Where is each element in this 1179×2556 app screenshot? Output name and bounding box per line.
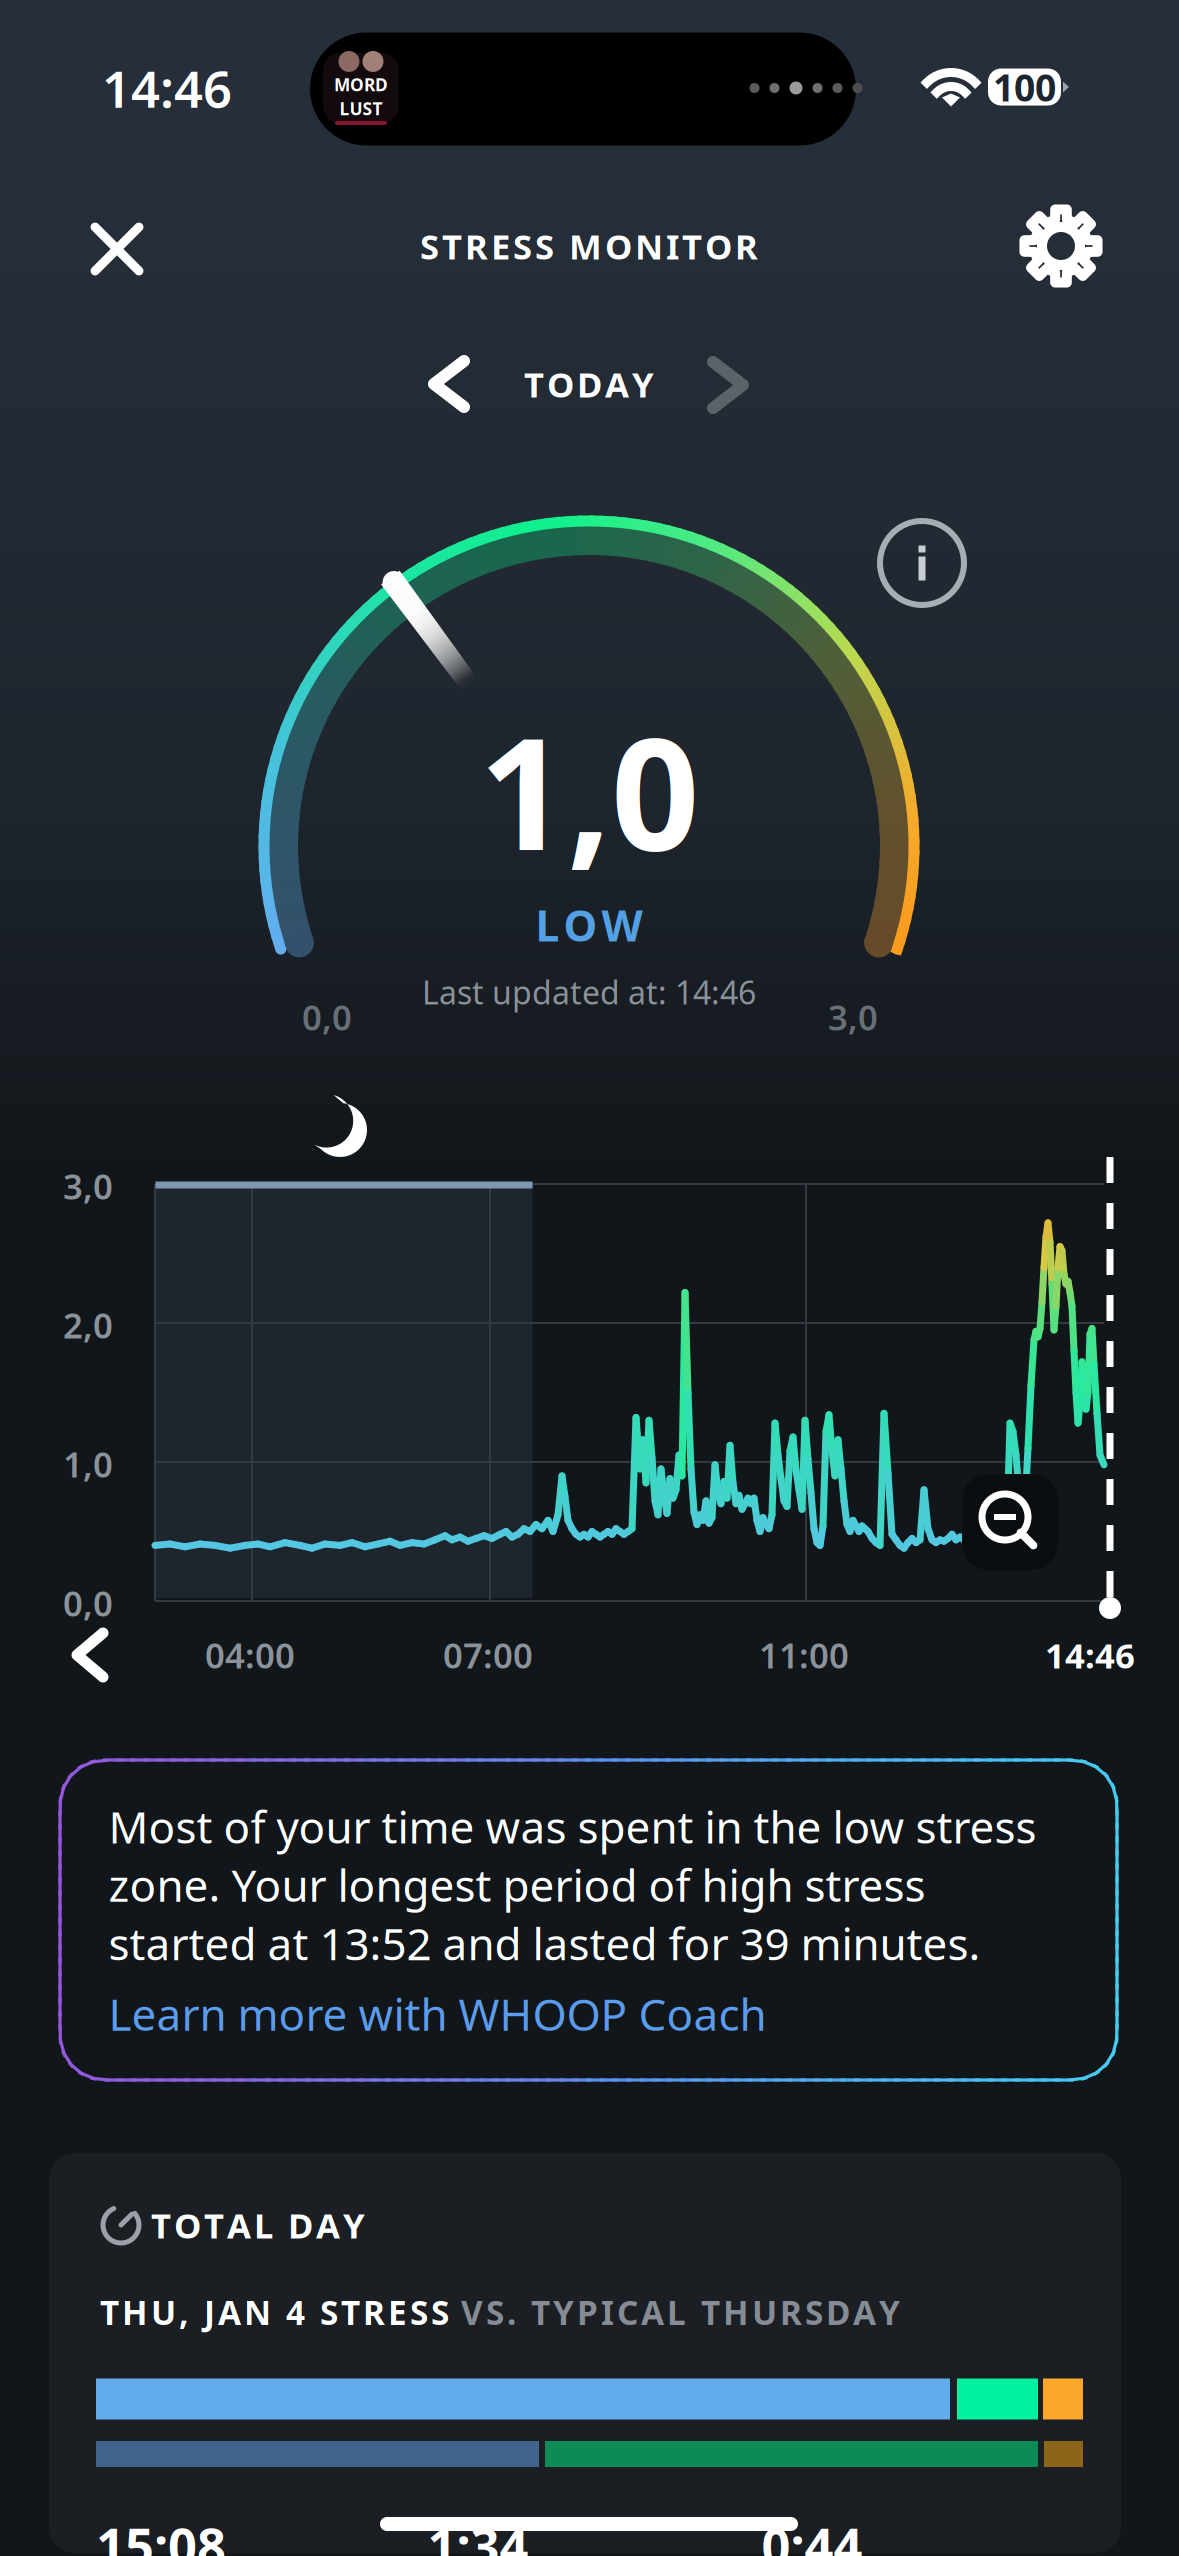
staticText: 1,0 xyxy=(479,687,699,893)
staticText: Learn more with WHOOP Coach xyxy=(108,1984,766,2043)
staticText: Last updated at: 14:46 xyxy=(422,971,756,1013)
staticText: 14:46 xyxy=(1045,1632,1135,1678)
staticText: L O W xyxy=(535,897,642,953)
button[interactable]: Close xyxy=(47,179,187,319)
staticText: 3,0 xyxy=(828,994,878,1040)
staticText: 2,0 xyxy=(63,1302,113,1348)
button[interactable]: Settings xyxy=(991,176,1131,316)
staticText: 0,0 xyxy=(63,1580,113,1626)
staticText: 04:00 xyxy=(205,1632,295,1678)
staticText: LUST xyxy=(339,97,382,120)
staticText: Most of your time was spent in the low s… xyxy=(108,1797,1036,1972)
staticText: T H U , J A N 4 S T R E S S xyxy=(100,2290,461,2334)
button[interactable]: Most of your time was spent in the low s… xyxy=(60,1760,1117,2080)
staticText: 1,0 xyxy=(63,1441,113,1487)
staticText: 14:46 xyxy=(102,54,232,122)
staticText: 3,0 xyxy=(63,1163,113,1209)
button[interactable]: Previous xyxy=(51,1607,129,1703)
button[interactable]: Previous day xyxy=(398,325,500,443)
staticText: 07:00 xyxy=(443,1632,533,1678)
staticText: 11:00 xyxy=(759,1632,849,1678)
staticText: V S . T Y P I C A L T H U R S D A Y xyxy=(461,2290,900,2334)
button[interactable]: Information xyxy=(880,521,964,605)
button[interactable]: Next day xyxy=(677,326,779,444)
staticText: 1:34 xyxy=(427,2511,528,2556)
staticText: T O D A Y xyxy=(524,361,654,407)
staticText: 100 xyxy=(993,62,1056,112)
staticText: 0:44 xyxy=(761,2511,862,2556)
staticText: MORD xyxy=(334,73,388,96)
staticText: 0,0 xyxy=(302,994,352,1040)
button[interactable]: Zoom out xyxy=(962,1474,1058,1570)
staticText: T O T A L D A Y xyxy=(151,2202,365,2248)
staticText: S T R E S S M O N I T O R xyxy=(420,223,758,269)
staticText: 15:08 xyxy=(96,2511,226,2556)
